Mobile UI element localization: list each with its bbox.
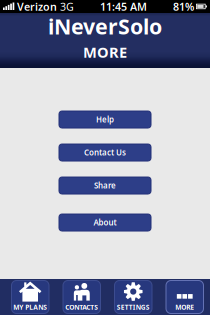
staticText: MY PLANS — [13, 303, 47, 311]
staticText: 11:45 AM — [100, 0, 147, 14]
staticText: MORE — [175, 303, 194, 311]
staticText: 81% — [173, 0, 194, 14]
button[interactable]: CONTACTS — [63, 280, 100, 313]
button[interactable]: MY PLANS — [11, 280, 49, 313]
staticText: iNeverSolo — [48, 12, 162, 40]
staticText: Help — [96, 114, 114, 125]
staticText: SETTINGS — [117, 303, 150, 311]
button[interactable]: Help — [59, 111, 151, 128]
button[interactable]: Share — [59, 177, 151, 194]
staticText: Share — [94, 180, 116, 191]
button[interactable]: MORE — [166, 280, 203, 313]
staticText: About — [93, 217, 116, 228]
staticText: Verizon — [17, 0, 57, 14]
staticText: 3G — [60, 0, 74, 14]
button[interactable]: SETTINGS — [114, 280, 152, 313]
button[interactable]: About — [59, 214, 151, 231]
staticText: MORE — [83, 42, 127, 62]
staticText: CONTACTS — [65, 303, 98, 311]
button[interactable]: Contact Us — [59, 144, 151, 161]
staticText: Contact Us — [84, 147, 126, 158]
